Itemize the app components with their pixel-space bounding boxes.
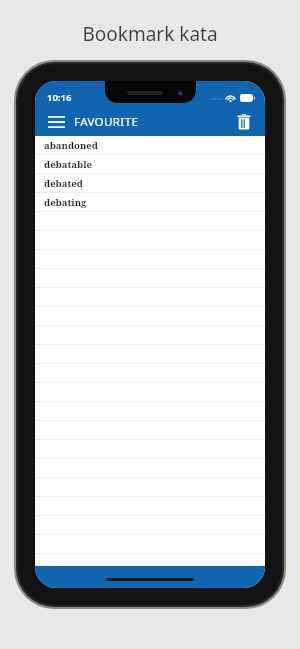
staticText: abandoned xyxy=(44,139,98,152)
button[interactable]: debatable xyxy=(35,155,265,174)
staticText: 10:16 xyxy=(47,91,72,104)
staticText: debatable xyxy=(44,158,92,171)
staticText: debating xyxy=(44,196,87,209)
staticText: Bookmark kata xyxy=(82,21,218,47)
button[interactable]: debating xyxy=(35,193,265,212)
button[interactable]: Open navigation menu xyxy=(44,110,68,134)
button[interactable]: Delete all favourites xyxy=(232,110,256,134)
staticText: debated xyxy=(44,177,83,190)
staticText: FAVOURITE xyxy=(74,114,139,130)
button[interactable]: debated xyxy=(35,174,265,193)
button[interactable]: abandoned xyxy=(35,136,265,155)
